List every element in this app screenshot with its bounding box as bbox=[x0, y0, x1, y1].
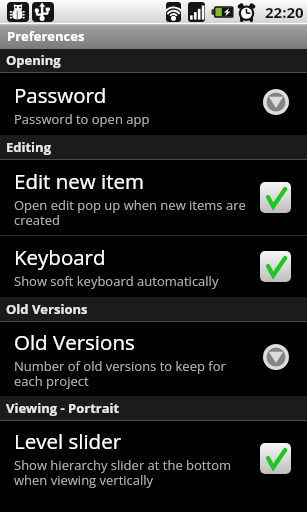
staticText: Number of old versions to keep for each … bbox=[14, 357, 252, 390]
staticText: Old Versions bbox=[14, 328, 135, 356]
staticText: Level slider bbox=[14, 427, 122, 455]
staticText: Show soft keyboard automatically bbox=[14, 272, 219, 290]
button[interactable]: Open list bbox=[263, 344, 289, 370]
staticText: Editing bbox=[6, 138, 51, 156]
staticText: Preferences bbox=[7, 27, 85, 45]
staticText: Opening bbox=[6, 51, 61, 69]
button[interactable]: Keyboard bbox=[0, 236, 307, 297]
staticText: Password to open app bbox=[14, 110, 150, 128]
button[interactable]: Password bbox=[0, 73, 307, 135]
button[interactable]: Toggle bbox=[260, 443, 291, 474]
button[interactable]: Level slider bbox=[0, 421, 307, 495]
button[interactable]: Toggle bbox=[260, 251, 291, 282]
staticText: Password bbox=[14, 81, 107, 109]
staticText: Viewing - Portrait bbox=[6, 399, 120, 417]
staticText: 22:20 bbox=[265, 2, 304, 22]
button[interactable]: Open list bbox=[263, 89, 289, 115]
staticText: Show hierarchy slider at the bottom when… bbox=[14, 456, 252, 489]
button[interactable]: Toggle bbox=[260, 182, 291, 213]
staticText: Old Versions bbox=[6, 300, 88, 318]
button[interactable]: Old Versions bbox=[0, 322, 307, 396]
staticText: Edit new item bbox=[14, 167, 145, 195]
button[interactable]: Edit new item bbox=[0, 160, 307, 235]
staticText: Open edit pop up when new items are crea… bbox=[14, 196, 252, 229]
staticText: Keyboard bbox=[14, 243, 106, 271]
